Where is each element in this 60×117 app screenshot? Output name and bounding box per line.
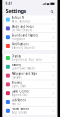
staticText: Display — [11, 54, 20, 58]
button[interactable]: Wallpaper and Style — [4, 71, 56, 80]
staticText: Notifications — [11, 42, 28, 46]
staticText: Game Center — [11, 90, 29, 93]
button[interactable]: Battery — [4, 63, 56, 71]
button[interactable]: Sounds and Haptics — [4, 33, 56, 42]
staticText: Sounds and Haptics — [11, 34, 37, 37]
button[interactable]: Display — [4, 54, 56, 63]
button[interactable]: Airbus TV — [4, 15, 56, 24]
button[interactable]: Search — [50, 9, 54, 14]
staticText: 9:41 — [5, 2, 12, 5]
button[interactable]: Mode and Focus — [4, 24, 56, 33]
staticText: Low Power Mode — [11, 67, 35, 70]
staticText: Airbus TV — [11, 16, 24, 20]
staticText: Light, Dark — [11, 84, 25, 88]
staticText: Mode and Focus — [11, 25, 33, 28]
button[interactable]: Home Screen — [4, 107, 56, 115]
staticText: Lock Screen — [11, 98, 26, 102]
staticText: Do Not Disturb — [11, 28, 32, 32]
button[interactable]: Notifications — [4, 42, 56, 50]
staticText: Brightness, True Tone — [11, 58, 42, 61]
staticText: Wallpaper and Style — [11, 72, 37, 76]
staticText: Dynamic — [11, 76, 21, 79]
staticText: Banners, Sounds — [11, 46, 34, 49]
staticText: Themes — [11, 81, 21, 84]
staticText: Wi-Fi, AirDrop — [11, 20, 30, 23]
button[interactable]: Lock Screen — [4, 98, 56, 107]
button[interactable]: Game Center — [4, 89, 56, 98]
staticText: Face ID — [11, 102, 20, 105]
staticText: Signed Out — [11, 93, 27, 97]
button[interactable]: Themes — [4, 80, 56, 89]
staticText: Settings — [5, 7, 26, 14]
staticText: Ringtone — [11, 37, 25, 41]
staticText: App Library — [11, 111, 26, 114]
staticText: Home Screen — [11, 107, 29, 111]
staticText: Battery — [11, 63, 20, 67]
